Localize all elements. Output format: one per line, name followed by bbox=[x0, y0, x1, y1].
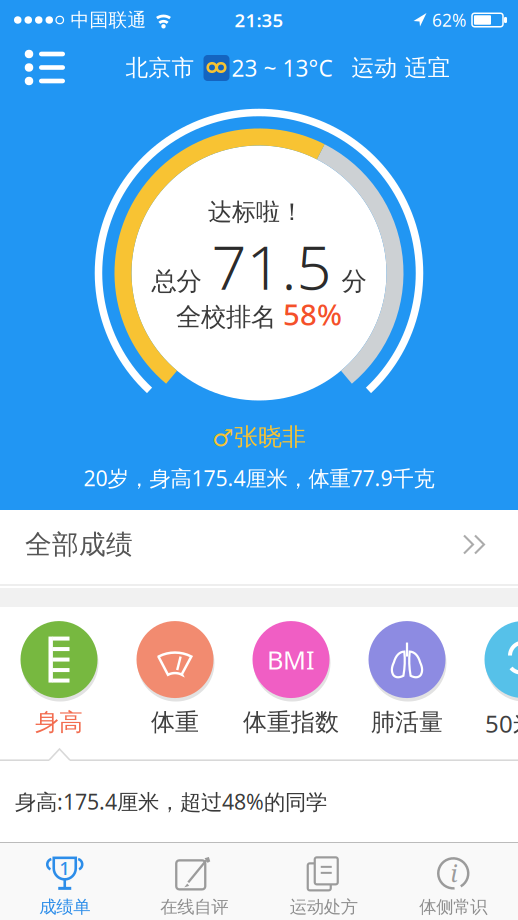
staticText: ♂张晓非 bbox=[212, 422, 306, 452]
button[interactable]: 1 bbox=[0, 843, 129, 919]
staticText: 23 ~ 13°C bbox=[231, 53, 332, 83]
staticText: 50米跑 bbox=[485, 708, 518, 739]
staticText: 1 bbox=[59, 855, 70, 880]
staticText: 体重 bbox=[151, 708, 199, 737]
staticText: 58% bbox=[283, 294, 342, 333]
staticText: 全部成绩 bbox=[25, 528, 133, 561]
button[interactable]: 体重 bbox=[134, 619, 216, 737]
staticText: 全校排名 bbox=[176, 301, 276, 332]
staticText: 运动 适宜 bbox=[351, 54, 450, 82]
staticText: 分 bbox=[341, 266, 366, 297]
staticText: 21:35 bbox=[234, 8, 283, 32]
staticText: 体侧常识 bbox=[419, 896, 487, 918]
staticText: 62% bbox=[432, 8, 466, 31]
staticText: 肺活量 bbox=[371, 708, 443, 737]
button[interactable]: 运动处方 bbox=[259, 843, 388, 919]
staticText: 体重指数 bbox=[243, 708, 339, 737]
staticText: 达标啦！ bbox=[208, 197, 304, 227]
staticText: 在线自评 bbox=[160, 896, 228, 918]
staticText: i bbox=[450, 856, 457, 889]
button[interactable]: 身高 bbox=[18, 619, 100, 737]
button[interactable]: 50米跑 bbox=[482, 619, 518, 739]
staticText: 20岁，身高175.4厘米，体重77.9千克 bbox=[83, 464, 434, 492]
button[interactable]: 菜单 bbox=[24, 48, 68, 88]
button[interactable]: i bbox=[388, 843, 518, 919]
button[interactable]: 全部成绩 bbox=[0, 510, 518, 588]
staticText: 中国联通 bbox=[70, 8, 146, 31]
staticText: 运动处方 bbox=[290, 896, 358, 918]
staticText: 身高:175.4厘米，超过48%的同学 bbox=[15, 787, 327, 816]
button[interactable]: BMI bbox=[243, 619, 339, 737]
staticText: 身高 bbox=[35, 708, 83, 737]
staticText: 北京市 bbox=[125, 54, 194, 82]
button[interactable]: 在线自评 bbox=[129, 843, 259, 919]
staticText: 总分 bbox=[151, 266, 201, 297]
button[interactable]: 肺活量 bbox=[366, 619, 448, 737]
staticText: 71.5 bbox=[211, 225, 331, 307]
staticText: 成绩单 bbox=[39, 896, 90, 918]
staticText: BMI bbox=[267, 643, 315, 676]
